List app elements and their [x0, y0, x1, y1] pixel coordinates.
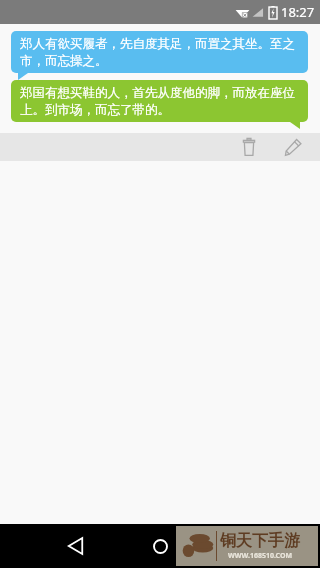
- button[interactable]: Back: [57, 528, 93, 564]
- button[interactable]: 郑国有想买鞋的人，首先从度他的脚，而放在座位上。到市场，而忘了带的。: [11, 80, 308, 122]
- staticText: 郑国有想买鞋的人，首先从度他的脚，而放在座位上。到市场，而忘了带的。: [20, 85, 299, 117]
- staticText: 18:27: [281, 3, 315, 21]
- staticText: 郑人有欲买履者，先自度其足，而置之其坐。至之市，而忘操之。: [20, 36, 299, 68]
- button[interactable]: Delete: [232, 133, 266, 161]
- button[interactable]: 郑人有欲买履者，先自度其足，而置之其坐。至之市，而忘操之。: [11, 31, 308, 73]
- button[interactable]: Edit: [276, 133, 310, 161]
- staticText: 铜天下手游: [220, 531, 300, 551]
- staticText: WWW.168510.COM: [228, 551, 293, 561]
- button[interactable]: Home: [142, 528, 178, 564]
